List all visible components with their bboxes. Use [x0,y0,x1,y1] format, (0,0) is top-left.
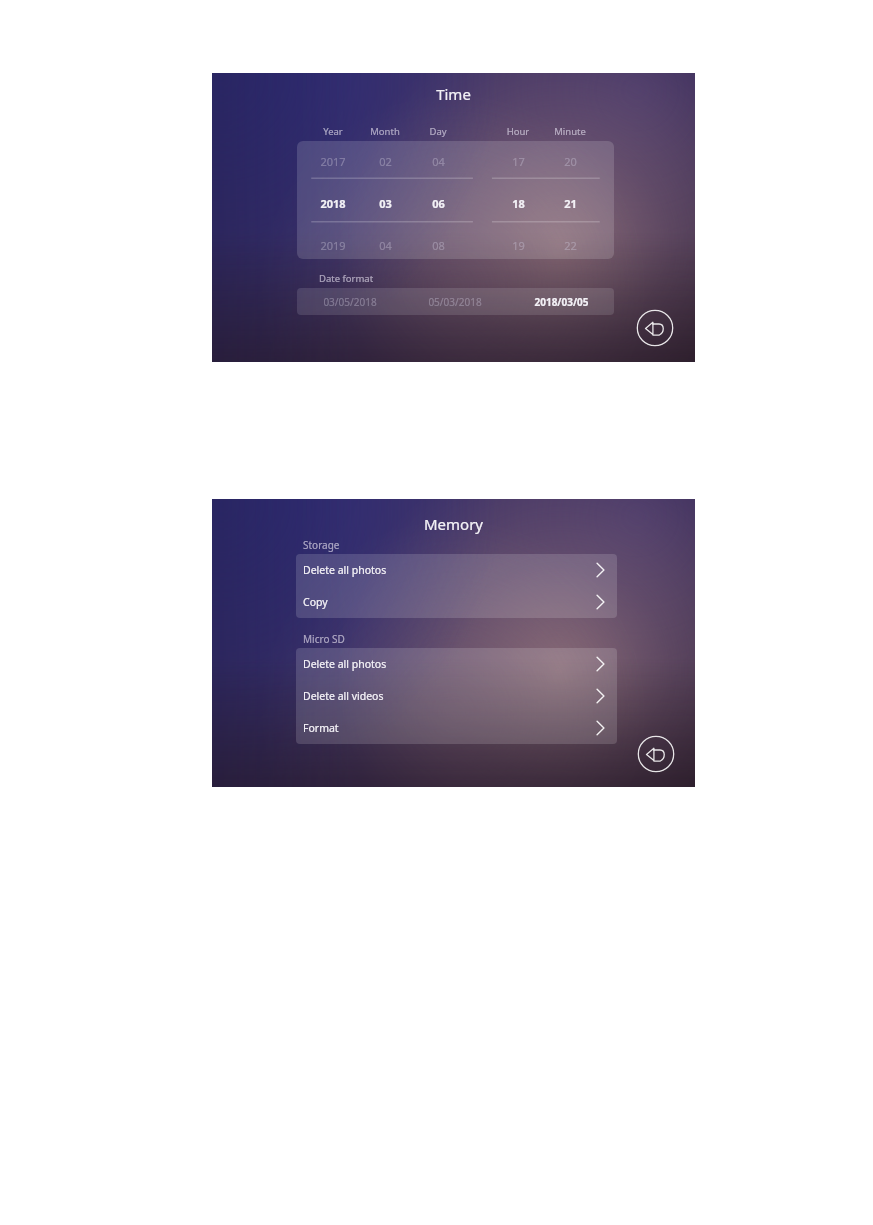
staticText: 2018 [320,196,346,211]
staticText: Date format [319,272,374,285]
button[interactable]: 05/03/2018 [402,288,508,315]
staticText: 18 [512,196,525,211]
button[interactable]: 2018/03/05 [508,288,614,315]
button[interactable]: 04 [408,152,468,170]
button[interactable]: 17 [488,152,548,170]
staticText: 17 [512,154,525,169]
button[interactable]: 22 [540,236,600,254]
button[interactable]: Format [296,712,617,744]
button[interactable]: 2017 [303,152,363,170]
staticText: 04 [379,238,392,253]
staticText: Format [303,721,339,735]
staticText: Micro SD [303,632,345,646]
button[interactable]: Delete all videos [296,680,617,712]
staticText: 03/05/2018 [323,295,377,309]
button[interactable]: Delete all photos [296,554,617,586]
staticText: 2017 [320,154,346,169]
staticText: 2018/03/05 [534,295,589,309]
button[interactable]: 08 [408,236,468,254]
staticText: Year [303,125,363,138]
staticText: Hour [488,125,548,138]
staticText: Minute [540,125,600,138]
staticText: 04 [432,154,445,169]
staticText: 21 [564,196,577,211]
staticText: Delete all photos [303,657,387,671]
button[interactable]: Back [637,735,675,773]
staticText: Delete all photos [303,563,387,577]
staticText: 22 [564,238,577,253]
staticText: Time [212,84,695,104]
button[interactable]: 04 [355,236,415,254]
staticText: Storage [303,538,340,552]
staticText: 2019 [320,238,346,253]
button[interactable]: 20 [540,152,600,170]
button[interactable]: 03/05/2018 [297,288,402,315]
button[interactable]: 19 [488,236,548,254]
button[interactable]: Delete all photos [296,648,617,680]
button[interactable]: 02 [355,152,415,170]
staticText: 05/03/2018 [428,295,482,309]
staticText: 19 [512,238,525,253]
staticText: Day [408,125,468,138]
staticText: 03 [379,196,392,211]
button[interactable]: 06 [408,194,468,212]
staticText: 06 [432,196,445,211]
button[interactable]: 18 [488,194,548,212]
staticText: Delete all videos [303,689,384,703]
staticText: Memory [212,514,695,534]
button[interactable]: 21 [540,194,600,212]
button[interactable]: 2018 [303,194,363,212]
staticText: 08 [432,238,445,253]
button[interactable]: 2019 [303,236,363,254]
staticText: Copy [303,595,328,609]
staticText: 02 [379,154,392,169]
button[interactable]: 03 [355,194,415,212]
button[interactable]: Copy [296,586,617,618]
button[interactable]: Back [636,309,674,347]
staticText: 20 [564,154,577,169]
staticText: Month [355,125,415,138]
